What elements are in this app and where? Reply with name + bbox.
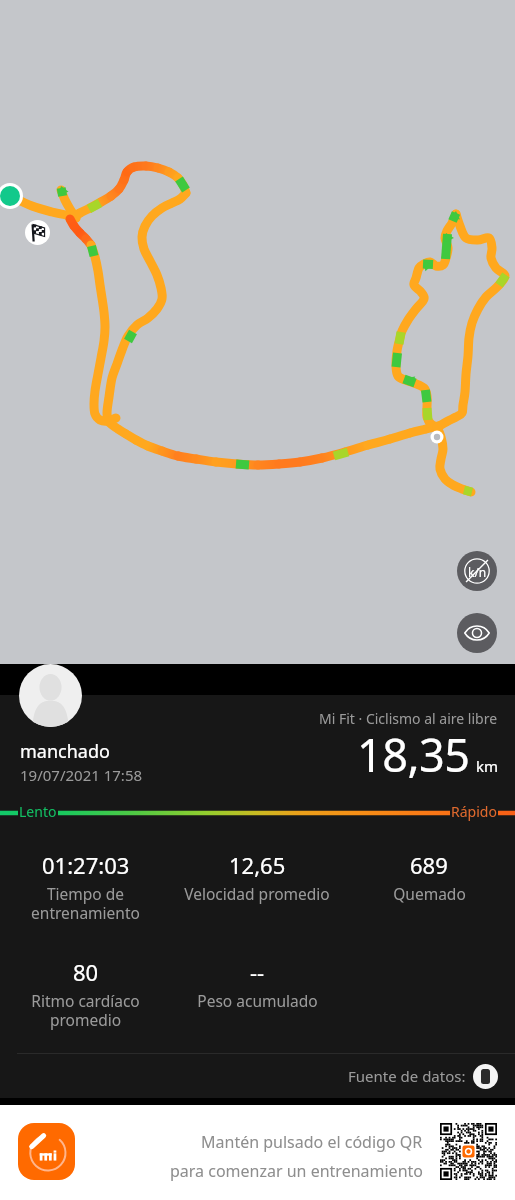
- staticText: manchado: [20, 739, 110, 764]
- staticText: 01:27:03: [42, 850, 130, 880]
- button[interactable]: Switch units: [457, 551, 497, 591]
- staticText: para comenzar un entrenamiento: [170, 1160, 423, 1182]
- staticText: 19/07/2021 17:58: [20, 765, 143, 785]
- staticText: 12,65: [229, 850, 286, 880]
- staticText: Mantén pulsado el código QR: [201, 1131, 423, 1153]
- staticText: --: [250, 957, 265, 987]
- staticText: k/n: [468, 564, 487, 580]
- staticText: Quemado: [393, 883, 466, 904]
- staticText: Lento: [19, 802, 57, 821]
- staticText: Peso acumulado: [197, 990, 318, 1011]
- button[interactable]: Mi Fit: [18, 1123, 75, 1180]
- staticText: Tiempo de entrenamiento: [31, 883, 140, 924]
- staticText: 689: [410, 850, 448, 880]
- staticText: Mi Fit · Ciclismo al aire libre: [319, 709, 498, 728]
- staticText: Velocidad promedio: [184, 883, 330, 904]
- staticText: km: [476, 756, 499, 776]
- button[interactable]: Show route: [457, 613, 497, 653]
- staticText: 18,35: [357, 724, 470, 785]
- staticText: Ritmo cardíaco promedio: [31, 990, 140, 1031]
- staticText: Rápido: [451, 802, 497, 821]
- staticText: Fuente de datos:: [348, 1066, 466, 1086]
- staticText: 80: [73, 957, 99, 987]
